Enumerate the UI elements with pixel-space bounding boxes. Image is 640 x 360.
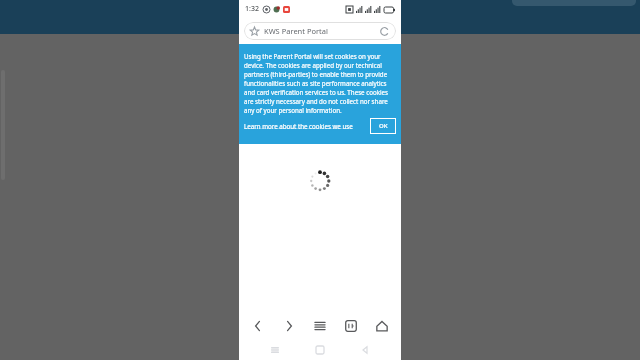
staticText: OK: [379, 122, 388, 130]
button[interactable]: Home: [311, 341, 329, 359]
button[interactable]: Reload: [378, 25, 390, 37]
button[interactable]: Back: [356, 341, 374, 359]
staticText: Learn more about the cookies we use: [244, 122, 353, 130]
button[interactable]: Home: [370, 314, 394, 338]
staticText: 1:32: [245, 4, 259, 14]
staticText: Using the Parent Portal will set cookies…: [244, 52, 396, 115]
button[interactable]: Tabs: [339, 314, 363, 338]
staticText: KWS Parent Portal: [264, 26, 328, 36]
button[interactable]: Back: [246, 314, 270, 338]
button[interactable]: Learn more about the cookies we use: [244, 122, 353, 130]
button[interactable]: OK: [370, 118, 396, 134]
button[interactable]: KWS Parent Portal: [244, 22, 396, 40]
button[interactable]: Menu: [308, 314, 332, 338]
button[interactable]: Recents: [266, 341, 284, 359]
button[interactable]: Forward: [277, 314, 301, 338]
